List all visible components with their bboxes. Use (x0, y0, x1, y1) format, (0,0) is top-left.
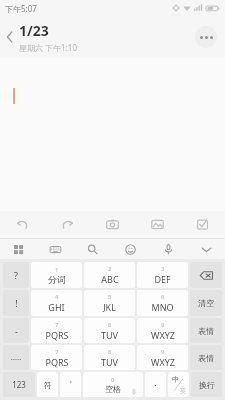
button[interactable]: 9 (137, 318, 188, 343)
button[interactable]: 8 (84, 318, 135, 343)
button[interactable]: Image (135, 211, 180, 238)
button[interactable]: Back (0, 20, 18, 54)
button[interactable]: 清空 (190, 290, 222, 316)
staticText: 英 (180, 387, 186, 395)
staticText: · (154, 379, 157, 391)
button[interactable]: 换行 (191, 372, 222, 397)
button[interactable]: 5 (84, 290, 135, 316)
staticText: WXYZ (151, 329, 175, 341)
button[interactable]: 符 (37, 372, 58, 397)
button[interactable]: ' (60, 372, 81, 397)
button[interactable]: Checklist (180, 211, 225, 238)
button[interactable]: 123 (3, 372, 35, 397)
staticText: 表情 (198, 326, 214, 336)
button[interactable]: Hide keyboard (187, 239, 225, 259)
staticText: 中 (172, 375, 179, 384)
button[interactable]: 4 (31, 290, 82, 316)
button[interactable]: Voice input (149, 239, 187, 259)
staticText: 7 (55, 348, 59, 356)
staticText: - (15, 325, 18, 337)
staticText: TUV (101, 329, 118, 341)
staticText: 换行 (199, 380, 215, 390)
staticText: 0 (111, 376, 115, 384)
button[interactable]: 表情 (190, 318, 222, 343)
staticText: 8 (108, 348, 112, 356)
button[interactable]: ? (3, 262, 29, 288)
button[interactable]: More options (195, 26, 217, 48)
staticText: ? (14, 269, 18, 281)
staticText: 下午5:07 (5, 3, 37, 14)
button[interactable]: Keyboard layout (37, 239, 74, 259)
staticText: ! (15, 297, 18, 309)
button[interactable]: 7 (31, 318, 82, 343)
button[interactable]: 3 (137, 262, 188, 288)
staticText: 3 (161, 265, 165, 273)
staticText: 清空 (198, 298, 214, 308)
staticText: 5 (108, 293, 112, 301)
staticText: PQRS (45, 356, 69, 368)
button[interactable]: 1 (31, 262, 82, 288)
button[interactable]: Chinese / English (168, 372, 189, 397)
staticText: 表情 (198, 353, 214, 363)
button[interactable]: Camera (90, 211, 135, 238)
button[interactable]: 0 (83, 372, 143, 397)
button[interactable]: …… (3, 345, 29, 370)
staticText: WXYZ (151, 356, 175, 368)
button[interactable]: Search (74, 239, 111, 259)
button[interactable]: ! (3, 290, 29, 316)
staticText: 空格 (105, 384, 121, 394)
button[interactable]: 8 (84, 345, 135, 370)
staticText: 123 (12, 379, 26, 390)
staticText: MNO (151, 301, 174, 313)
button[interactable]: 6 (137, 290, 188, 316)
button[interactable]: Redo (45, 211, 90, 238)
staticText: 4 (55, 293, 59, 301)
staticText: DEF (154, 273, 171, 285)
staticText: 7 (55, 321, 59, 329)
staticText: JKL (103, 301, 116, 313)
button[interactable]: 9 (137, 345, 188, 370)
staticText: 1 (55, 266, 59, 274)
staticText: 星期六 下午1:10 (19, 42, 77, 53)
staticText: GHI (48, 301, 65, 313)
staticText: 2 (108, 265, 112, 273)
button[interactable]: · (145, 372, 166, 397)
button[interactable]: Emoji (111, 239, 149, 259)
staticText: 8 (108, 321, 112, 329)
staticText: 1/23 (19, 21, 49, 40)
button[interactable]: Backspace (190, 262, 222, 288)
staticText: ABC (101, 273, 119, 285)
staticText: PQRS (45, 329, 69, 341)
staticText: 9 (161, 348, 165, 356)
button[interactable]: - (3, 318, 29, 343)
staticText: TUV (101, 356, 118, 368)
staticText: 符 (44, 380, 52, 390)
button[interactable]: 7 (31, 345, 82, 370)
button[interactable]: Undo (0, 211, 45, 238)
staticText: 9 (161, 321, 165, 329)
button[interactable]: 表情 (190, 345, 222, 370)
staticText: ' (70, 379, 72, 390)
staticText: 分词 (48, 274, 66, 285)
staticText: …… (10, 353, 22, 363)
button[interactable]: 2 (84, 262, 135, 288)
button[interactable]: Apps (0, 239, 37, 259)
staticText: 6 (161, 293, 165, 301)
